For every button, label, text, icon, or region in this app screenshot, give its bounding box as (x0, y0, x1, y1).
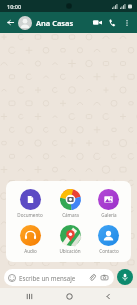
staticText: Audio (24, 248, 37, 254)
staticText: Ubicación (59, 248, 81, 254)
button[interactable]: Call (105, 15, 120, 30)
button[interactable]: Contacto (90, 224, 127, 255)
button[interactable]: Back (4, 16, 17, 29)
button[interactable]: Back (97, 288, 119, 305)
button[interactable]: Cámara (50, 188, 90, 219)
button[interactable]: Galería (90, 188, 127, 219)
button[interactable]: Recents (18, 288, 40, 305)
staticText: Escribe un mensaje (19, 274, 87, 282)
staticText: Galería (101, 212, 117, 218)
button[interactable]: More options (120, 16, 133, 29)
staticText: Contacto (99, 248, 119, 254)
button[interactable]: Video call (90, 15, 105, 30)
staticText: 10:00 (7, 3, 22, 10)
button[interactable]: Ana Casas (18, 12, 90, 33)
button[interactable]: Documento (10, 188, 50, 219)
staticText: Documento (17, 212, 43, 218)
button[interactable]: Home (58, 288, 80, 305)
button[interactable]: Attach (87, 272, 98, 283)
button[interactable]: Ubicación (50, 224, 90, 255)
button[interactable]: Audio (10, 224, 50, 255)
staticText: Ana Casas (36, 18, 74, 28)
button[interactable]: Voice message (117, 269, 133, 285)
staticText: Cámara (62, 212, 79, 218)
button[interactable]: Escribe un mensaje (4, 269, 114, 286)
button[interactable]: Camera (99, 272, 110, 283)
